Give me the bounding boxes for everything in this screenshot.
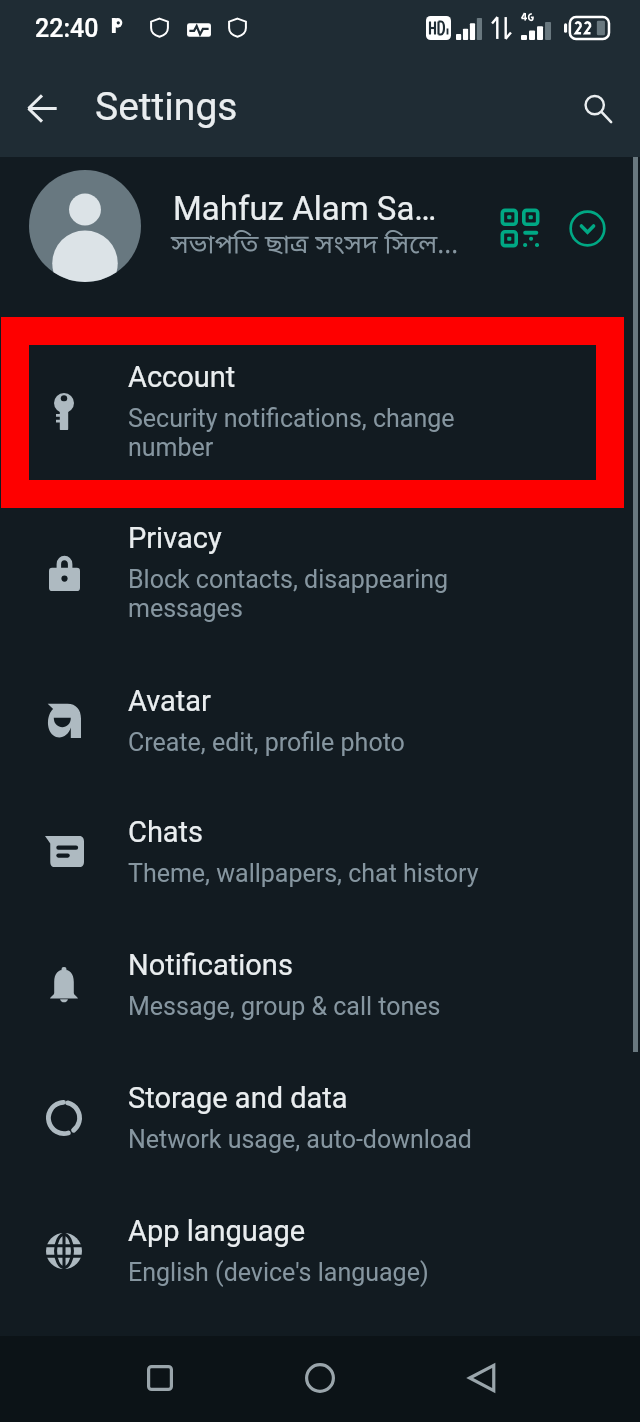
staticText: Security notifications, change — [128, 404, 455, 433]
staticText: Chats — [128, 815, 204, 849]
button[interactable]: Expand profile — [555, 196, 619, 260]
button[interactable]: Home — [282, 1340, 358, 1416]
staticText: Privacy — [128, 521, 222, 555]
staticText: messages — [128, 594, 243, 623]
staticText: Account — [128, 360, 236, 394]
button[interactable]: Privacy — [0, 521, 640, 683]
other: Account — [0, 360, 128, 463]
staticText: English (device's language) — [128, 1258, 429, 1287]
button[interactable]: Search — [563, 74, 631, 142]
button[interactable]: Recent apps — [122, 1340, 198, 1416]
button[interactable]: Back — [444, 1340, 520, 1416]
other: Storage and data — [0, 1081, 128, 1154]
staticText: Create, edit, profile photo — [128, 728, 405, 757]
other: Notifications — [0, 948, 128, 1021]
staticText: Avatar — [128, 684, 211, 718]
staticText: Theme, wallpapers, chat history — [128, 859, 479, 888]
staticText: Network usage, auto-download — [128, 1125, 472, 1154]
other: Privacy — [0, 521, 128, 624]
staticText: Block contacts, disappearing — [128, 565, 449, 594]
button[interactable]: Avatar — [0, 684, 640, 816]
staticText: Notifications — [128, 948, 293, 982]
staticText: 22:40 — [35, 14, 99, 43]
staticText: App language — [128, 1214, 306, 1248]
staticText: Mahfuz Alam Sa… — [173, 189, 437, 228]
button[interactable]: Back — [8, 74, 76, 142]
staticText: Storage and data — [128, 1081, 348, 1115]
button[interactable]: Notifications — [0, 948, 640, 1080]
button[interactable]: Chats — [0, 815, 640, 947]
button[interactable]: QR code — [488, 196, 552, 260]
staticText: Settings — [95, 84, 238, 130]
other: Avatar — [0, 684, 128, 757]
staticText: Message, group & call tones — [128, 992, 441, 1021]
staticText: number — [128, 433, 214, 462]
other: App language — [0, 1214, 128, 1287]
staticText: সভাপতি ছাত্র সংসদ সিলে… — [171, 229, 459, 263]
other: Chats — [0, 815, 128, 888]
button[interactable]: Mahfuz Alam Sa… — [0, 157, 640, 317]
button[interactable]: Account — [0, 360, 640, 522]
button[interactable]: App language — [0, 1214, 640, 1346]
button[interactable]: Storage and data — [0, 1081, 640, 1213]
